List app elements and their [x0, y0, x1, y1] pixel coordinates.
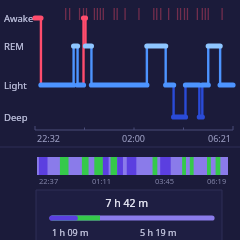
- button[interactable]: Sleep stages chart: [0, 0, 240, 240]
